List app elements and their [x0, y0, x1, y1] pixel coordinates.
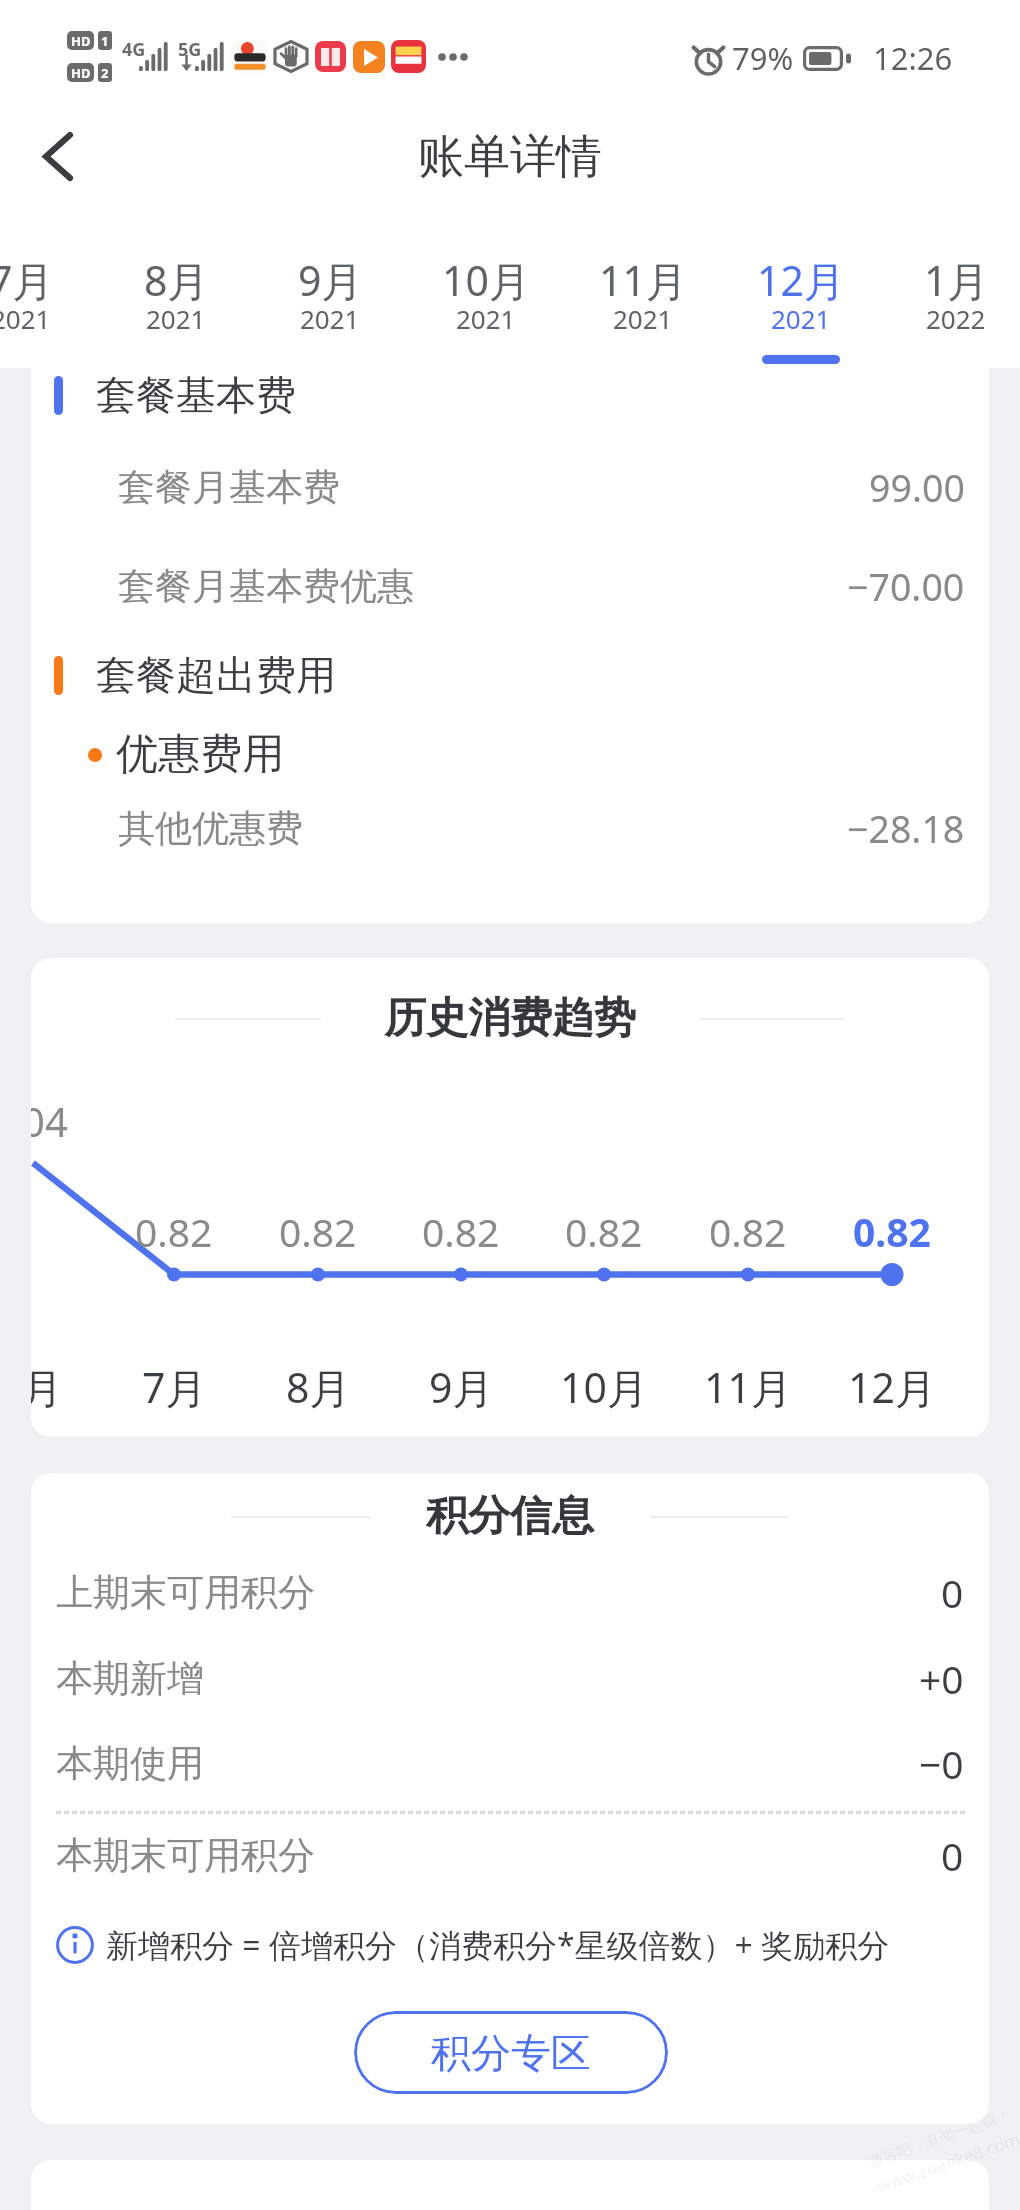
- button[interactable]: 8月: [98, 237, 254, 368]
- button[interactable]: 优惠费用: [0, 728, 1020, 781]
- staticText: 0.82: [565, 1205, 643, 1258]
- button[interactable]: 本期使用: [0, 1737, 1020, 1790]
- staticText: 10月: [442, 252, 530, 308]
- staticText: 其他优惠费: [118, 805, 303, 852]
- staticText: 12月: [848, 1359, 936, 1415]
- staticText: 2021: [0, 301, 51, 336]
- staticText: 79%: [732, 37, 794, 79]
- staticText: 99.00: [869, 462, 965, 513]
- staticText: 本期新增: [56, 1655, 204, 1702]
- staticText: 本期使用: [56, 1740, 204, 1787]
- staticText: 8月: [286, 1359, 351, 1415]
- staticText: 赚客吧，有奖一起赚！: [866, 2105, 1014, 2172]
- button[interactable]: 12月: [723, 237, 879, 368]
- staticText: 11月: [599, 252, 687, 308]
- staticText: 0.82: [853, 1205, 931, 1258]
- staticText: www.zuanke8.com: [873, 2127, 1020, 2198]
- staticText: 2022: [926, 301, 986, 336]
- staticText: 2021: [146, 301, 206, 336]
- button[interactable]: 1月: [878, 237, 1020, 368]
- staticText: 0: [941, 1829, 964, 1882]
- staticText: 0.82: [422, 1205, 500, 1258]
- staticText: HD: [71, 32, 91, 50]
- staticText: 积分信息: [426, 1490, 594, 1543]
- staticText: 积分专区: [431, 2028, 591, 2078]
- staticText: 0.82: [279, 1205, 357, 1258]
- staticText: 0: [941, 1566, 964, 1619]
- staticText: 7月: [0, 252, 54, 308]
- staticText: 11月: [704, 1359, 792, 1415]
- staticText: 12:26: [873, 37, 953, 79]
- staticText: 2021: [613, 301, 673, 336]
- staticText: 04: [31, 1094, 68, 1148]
- staticText: 套餐超出费用: [96, 650, 336, 700]
- staticText: 10月: [560, 1359, 648, 1415]
- staticText: 7月: [142, 1359, 207, 1415]
- staticText: 2021: [300, 301, 360, 336]
- staticText: 8月: [144, 252, 209, 308]
- staticText: 1月: [924, 252, 989, 308]
- button[interactable]: 11月: [565, 237, 721, 368]
- staticText: 2: [101, 64, 109, 82]
- staticText: 上期末可用积分: [56, 1569, 315, 1616]
- staticText: 6月: [31, 1359, 63, 1415]
- staticText: 新增积分 = 倍增积分（消费积分*星级倍数）+ 奖励积分: [106, 1923, 890, 1967]
- staticText: 5G: [178, 37, 202, 62]
- staticText: 账单详情: [418, 128, 602, 186]
- button[interactable]: 套餐月基本费优惠: [0, 561, 1020, 612]
- staticText: −70.00: [847, 561, 965, 612]
- staticText: 2021: [771, 301, 831, 336]
- staticText: −28.18: [847, 803, 965, 854]
- button[interactable]: 10月: [408, 237, 564, 368]
- button[interactable]: 9月: [252, 237, 408, 368]
- staticText: 4G: [122, 37, 146, 62]
- staticText: 9月: [298, 252, 363, 308]
- button[interactable]: 其他优惠费: [0, 803, 1020, 854]
- staticText: HD: [71, 64, 91, 82]
- staticText: +0: [919, 1652, 964, 1705]
- staticText: 套餐基本费: [96, 370, 296, 420]
- staticText: 套餐月基本费: [118, 464, 340, 511]
- staticText: −0: [919, 1737, 964, 1790]
- staticText: 优惠费用: [116, 728, 284, 781]
- staticText: 本期末可用积分: [56, 1832, 315, 1879]
- button[interactable]: 上期末可用积分: [0, 1566, 1020, 1619]
- button[interactable]: 本期新增: [0, 1652, 1020, 1705]
- button[interactable]: Back: [20, 118, 96, 194]
- button[interactable]: 套餐月基本费: [0, 462, 1020, 513]
- staticText: 2021: [456, 301, 516, 336]
- button[interactable]: 本期末可用积分: [0, 1829, 1020, 1882]
- staticText: 历史消费趋势: [384, 992, 636, 1045]
- button[interactable]: 7月: [0, 237, 99, 368]
- staticText: 12月: [757, 252, 845, 308]
- button[interactable]: 积分专区: [354, 2011, 668, 2094]
- staticText: 0.82: [135, 1205, 213, 1258]
- staticText: 1: [101, 32, 109, 50]
- staticText: 9月: [429, 1359, 494, 1415]
- staticText: 0.82: [709, 1205, 787, 1258]
- staticText: 套餐月基本费优惠: [118, 563, 414, 610]
